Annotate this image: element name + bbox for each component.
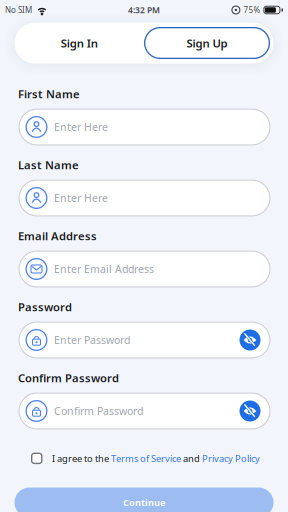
staticText: 4:32 PM	[128, 4, 160, 16]
staticText: Password	[18, 299, 72, 315]
staticText: and	[181, 452, 202, 465]
button[interactable]: Enter Password	[18, 321, 270, 358]
staticText: Continue	[123, 496, 165, 509]
button[interactable]: Sign In	[14, 22, 144, 63]
staticText: Confirm Password	[54, 404, 143, 418]
staticText: Enter Here	[54, 120, 108, 134]
staticText: No SIM	[5, 5, 32, 15]
button[interactable]: I agree	[31, 453, 42, 464]
staticText: Sign Up	[186, 35, 227, 51]
button[interactable]: Enter Here	[18, 179, 270, 216]
staticText: Terms of Service	[111, 452, 181, 465]
staticText: Confirm Password	[18, 370, 119, 386]
staticText: Last Name	[18, 157, 79, 173]
button[interactable]: Enter Email Address	[18, 250, 270, 287]
button[interactable]: Sign Up	[144, 27, 273, 59]
staticText: Enter Password	[54, 333, 130, 347]
staticText: Privacy Policy	[202, 452, 260, 465]
button[interactable]: Enter Here	[18, 108, 270, 145]
staticText: Enter Email Address	[54, 262, 154, 276]
button[interactable]: Continue	[14, 487, 273, 512]
staticText: First Name	[18, 86, 80, 102]
staticText: Sign In	[61, 35, 98, 51]
button[interactable]: Confirm Password	[18, 392, 270, 429]
staticText: 75%	[243, 5, 260, 15]
staticText: Enter Here	[54, 191, 108, 205]
button[interactable]: Show password	[239, 400, 260, 421]
button[interactable]: Privacy Policy	[202, 452, 260, 465]
staticText: Email Address	[18, 228, 97, 244]
staticText: I agree to the	[52, 452, 111, 465]
button[interactable]: Show password	[239, 329, 260, 350]
button[interactable]: Terms of Service	[111, 452, 181, 465]
